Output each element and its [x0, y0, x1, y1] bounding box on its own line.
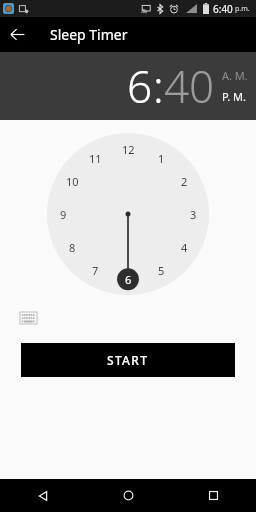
staticText: 4: [181, 240, 188, 255]
staticText: 9: [60, 207, 67, 222]
button[interactable]: Back: [0, 479, 86, 512]
staticText: 2: [181, 174, 188, 189]
staticText: Sleep Timer: [50, 25, 128, 44]
button[interactable]: 40: [164, 56, 215, 116]
staticText: :: [153, 56, 164, 116]
button[interactable]: Home: [86, 479, 171, 512]
button[interactable]: Switch to text input: [16, 306, 40, 330]
button[interactable]: Back: [0, 17, 35, 52]
staticText: 1: [158, 151, 165, 166]
button[interactable]: P. M.: [222, 89, 246, 104]
staticText: 6: [127, 56, 153, 116]
button[interactable]: START: [21, 343, 235, 377]
staticText: P. M.: [222, 89, 246, 104]
staticText: START: [107, 352, 149, 368]
button[interactable]: 12: [47, 133, 209, 295]
staticText: 11: [89, 151, 102, 166]
staticText: 7: [92, 263, 99, 278]
staticText: 6: [125, 272, 132, 287]
staticText: 40: [164, 56, 215, 116]
button[interactable]: 6: [127, 56, 153, 116]
staticText: 12: [122, 142, 135, 157]
staticText: A. M.: [222, 68, 248, 83]
staticText: 10: [66, 174, 79, 189]
staticText: 6:40: [213, 2, 233, 16]
staticText: 3: [190, 207, 197, 222]
button[interactable]: Recent apps: [171, 479, 256, 512]
staticText: 5: [158, 263, 165, 278]
button[interactable]: A. M.: [222, 68, 248, 83]
staticText: p.m.: [235, 4, 250, 14]
staticText: 8: [69, 240, 76, 255]
